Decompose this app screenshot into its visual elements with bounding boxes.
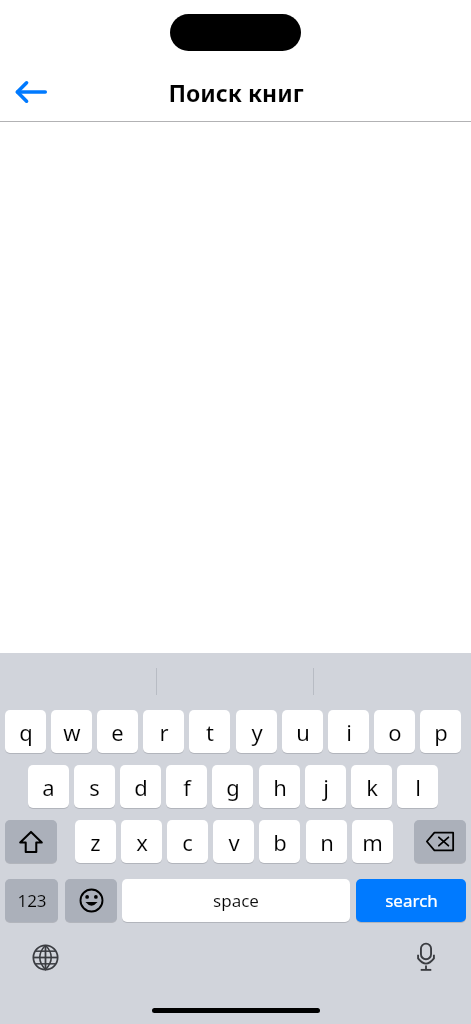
staticText: j (323, 772, 329, 802)
button[interactable]: space (122, 879, 350, 922)
button[interactable] (414, 820, 466, 863)
staticText: y (251, 717, 263, 747)
staticText: x (136, 827, 148, 857)
button[interactable]: k (351, 765, 392, 808)
button[interactable]: q (5, 710, 46, 753)
staticText: search (385, 889, 438, 912)
staticText: e (111, 717, 124, 747)
staticText: r (159, 717, 169, 747)
button[interactable]: h (259, 765, 300, 808)
staticText: h (273, 772, 287, 802)
other: Shift (5, 820, 57, 863)
button[interactable]: j (305, 765, 346, 808)
other: Emoji (65, 879, 117, 922)
button[interactable]: e (97, 710, 138, 753)
button[interactable]: o (374, 710, 415, 753)
button[interactable]: z (75, 820, 116, 863)
staticText: p (434, 717, 448, 747)
staticText: w (63, 717, 81, 747)
button[interactable]: i (328, 710, 369, 753)
button[interactable]: d (120, 765, 161, 808)
button[interactable]: w (51, 710, 92, 753)
staticText: i (346, 717, 352, 747)
staticText: Поиск книг (168, 77, 304, 108)
button[interactable]: Back (4, 65, 58, 119)
staticText: v (228, 827, 240, 857)
staticText: l (415, 772, 421, 802)
staticText: q (19, 717, 33, 747)
staticText: o (388, 717, 402, 747)
button[interactable]: r (143, 710, 184, 753)
button[interactable]: Dictation (403, 934, 449, 980)
staticText: f (183, 772, 191, 802)
button[interactable]: m (352, 820, 393, 863)
button[interactable]: t (189, 710, 230, 753)
button[interactable]: search (356, 879, 466, 922)
staticText: b (273, 827, 287, 857)
staticText: n (320, 827, 334, 857)
staticText: k (366, 772, 378, 802)
button[interactable]: s (74, 765, 115, 808)
button[interactable]: 123 (5, 879, 58, 922)
other: Backspace (414, 820, 466, 863)
button[interactable]: v (213, 820, 254, 863)
staticText: a (42, 772, 55, 802)
staticText: u (296, 717, 310, 747)
button[interactable]: f (166, 765, 207, 808)
staticText: m (362, 827, 383, 857)
button[interactable] (65, 879, 117, 922)
button[interactable]: c (167, 820, 208, 863)
staticText: s (89, 772, 100, 802)
button[interactable]: a (28, 765, 69, 808)
staticText: g (226, 772, 240, 802)
button[interactable]: y (236, 710, 277, 753)
button[interactable]: l (397, 765, 438, 808)
button[interactable]: p (420, 710, 461, 753)
button[interactable]: n (306, 820, 347, 863)
staticText: z (90, 827, 101, 857)
staticText: space (213, 889, 259, 912)
staticText: 123 (17, 889, 47, 912)
button[interactable] (5, 820, 57, 863)
staticText: c (182, 827, 193, 857)
button[interactable]: g (212, 765, 253, 808)
button[interactable]: Change keyboard (22, 934, 68, 980)
button[interactable]: b (259, 820, 300, 863)
button[interactable]: x (121, 820, 162, 863)
staticText: d (134, 772, 148, 802)
staticText: t (206, 717, 214, 747)
button[interactable]: u (282, 710, 323, 753)
